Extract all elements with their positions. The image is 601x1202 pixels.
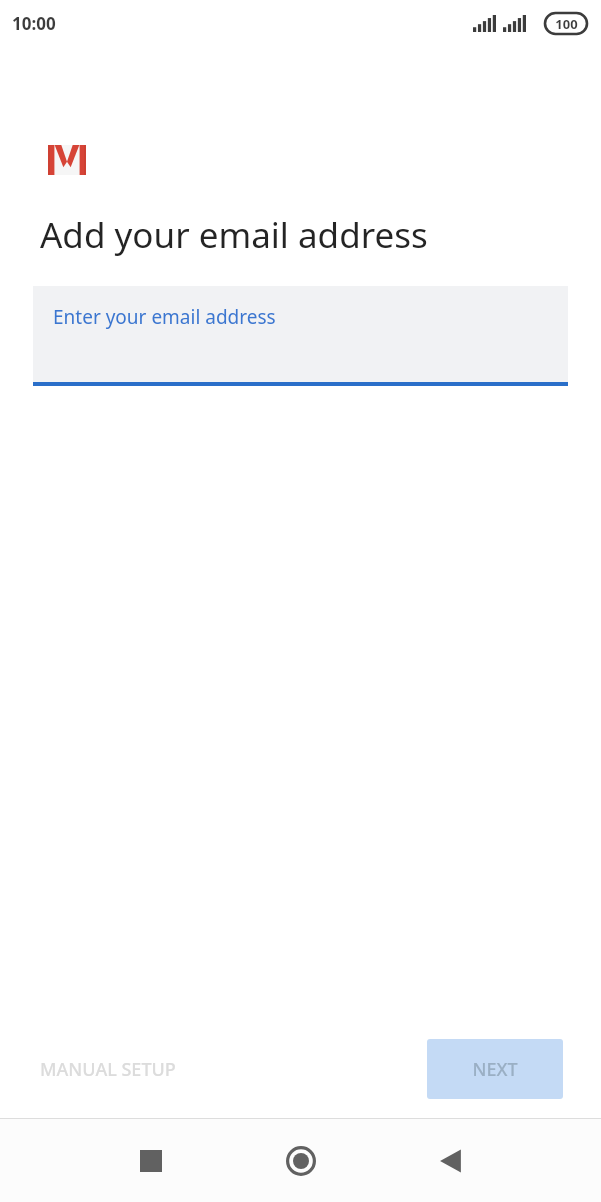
staticText: 10:00 — [12, 12, 56, 35]
staticText: Add your email address — [40, 211, 428, 259]
staticText: Enter your email address — [53, 304, 276, 330]
staticText: NEXT — [472, 1057, 518, 1082]
button[interactable]: NEXT — [427, 1039, 563, 1099]
button[interactable]: Home — [273, 1133, 329, 1189]
other: Gmail — [48, 145, 86, 175]
staticText: MANUAL SETUP — [40, 1057, 176, 1082]
button[interactable]: Back — [423, 1133, 479, 1189]
button[interactable]: Enter your email address — [33, 286, 568, 386]
button[interactable]: Recent apps — [123, 1133, 179, 1189]
staticText: 100 — [555, 15, 578, 33]
button[interactable]: MANUAL SETUP — [28, 1045, 188, 1094]
